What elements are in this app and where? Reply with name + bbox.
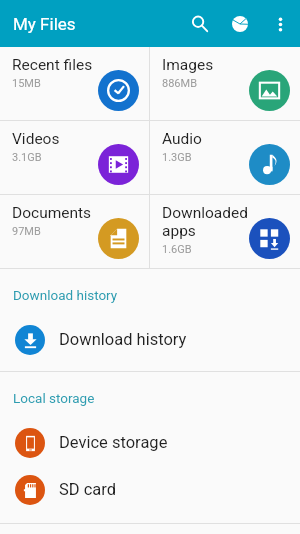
staticText: Download history <box>13 287 118 303</box>
staticText: Videos <box>12 130 60 148</box>
staticText: 97MB <box>12 225 41 238</box>
staticText: Audio <box>162 130 202 148</box>
button[interactable]: Storage analysis <box>222 6 258 42</box>
button[interactable]: Audio <box>150 121 300 194</box>
staticText: 1.3GB <box>162 151 192 164</box>
button[interactable]: Download history <box>0 316 300 363</box>
staticText: 886MB <box>162 77 198 90</box>
staticText: Recent files <box>12 56 93 74</box>
button[interactable]: Images <box>150 47 300 120</box>
staticText: Local storage <box>13 390 95 406</box>
staticText: 3.1GB <box>12 151 42 164</box>
button[interactable]: Videos <box>0 121 149 194</box>
staticText: 1.6GB <box>162 243 192 256</box>
button[interactable]: Device storage <box>0 419 300 466</box>
button[interactable]: Search <box>182 6 218 42</box>
staticText: Documents <box>12 204 92 222</box>
staticText: Images <box>162 56 214 74</box>
staticText: My Files <box>13 14 76 34</box>
button[interactable]: Downloaded apps <box>150 195 300 268</box>
button[interactable]: More options <box>262 6 298 42</box>
button[interactable]: Recent files <box>0 47 149 120</box>
staticText: Download history <box>59 330 187 349</box>
button[interactable]: Documents <box>0 195 149 268</box>
staticText: Downloaded apps <box>162 204 256 240</box>
staticText: Device storage <box>59 433 168 452</box>
button[interactable]: SD card <box>0 466 300 513</box>
staticText: 15MB <box>12 77 41 90</box>
staticText: SD card <box>59 480 117 499</box>
